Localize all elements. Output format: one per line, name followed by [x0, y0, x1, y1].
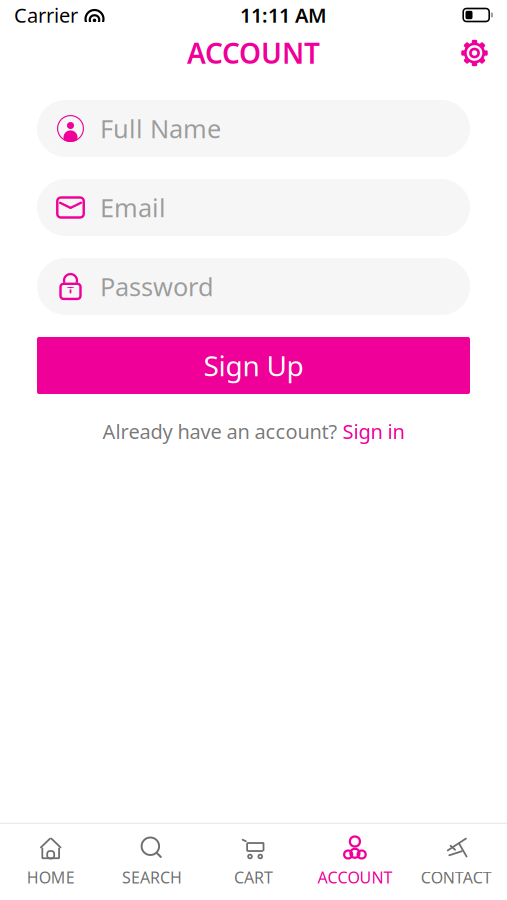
button[interactable]: Password: [37, 258, 470, 315]
button[interactable]: Settings: [451, 29, 498, 76]
button[interactable]: Full Name: [37, 100, 470, 157]
button[interactable]: Sign Up: [37, 337, 470, 394]
staticText: CART: [234, 867, 273, 888]
button[interactable]: HOME: [0, 831, 101, 893]
staticText: 11:11 AM: [240, 2, 327, 28]
staticText: Full Name: [100, 112, 221, 145]
staticText: ACCOUNT: [317, 867, 392, 888]
staticText: SEARCH: [122, 867, 182, 888]
staticText: Already have an account?: [102, 418, 337, 445]
button[interactable]: Email: [37, 179, 470, 236]
staticText: HOME: [27, 867, 75, 888]
button[interactable]: ACCOUNT: [304, 831, 406, 893]
staticText: Carrier: [14, 2, 78, 28]
button[interactable]: SEARCH: [101, 831, 203, 893]
staticText: Sign in: [342, 418, 404, 445]
staticText: Password: [100, 270, 214, 303]
staticText: Sign Up: [203, 347, 303, 384]
button[interactable]: CONTACT: [406, 831, 507, 893]
button[interactable]: CART: [203, 831, 304, 893]
staticText: CONTACT: [421, 867, 492, 888]
staticText: Email: [100, 191, 166, 224]
staticText: ACCOUNT: [187, 34, 320, 72]
button[interactable]: Already have an account?: [102, 416, 404, 447]
